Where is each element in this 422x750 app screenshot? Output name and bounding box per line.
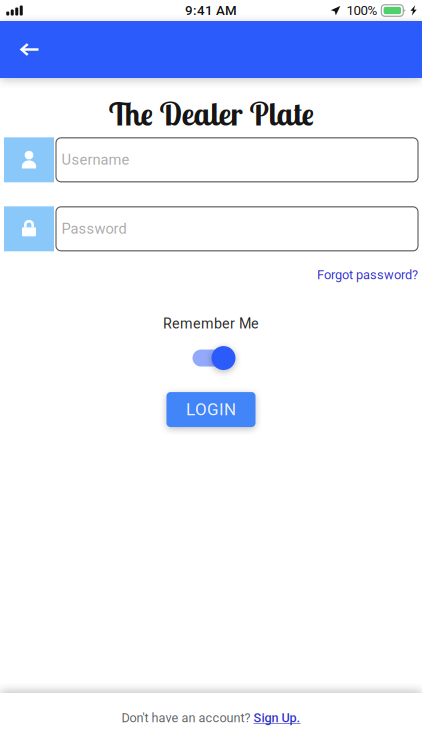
button[interactable]: Forgot password? <box>317 267 418 282</box>
staticText: Forgot password? <box>317 267 418 282</box>
button[interactable]: Back <box>8 27 50 71</box>
staticText: Remember Me <box>163 315 259 332</box>
button[interactable]: Sign Up. <box>253 711 300 725</box>
staticText: Sign Up. <box>253 711 300 725</box>
staticText: Username <box>61 151 129 168</box>
staticText: LOGIN <box>186 400 236 419</box>
button[interactable]: LOGIN <box>166 392 255 427</box>
staticText: 9:41 AM <box>185 3 237 18</box>
button[interactable]: Remember Me <box>192 345 235 371</box>
button[interactable]: Username <box>56 138 418 182</box>
staticText: Don't have an account? <box>121 711 253 725</box>
staticText: 100% <box>346 3 377 18</box>
staticText: Password <box>61 220 126 237</box>
button[interactable]: Password <box>56 207 418 251</box>
staticText: The Dealer Plate <box>108 94 313 133</box>
